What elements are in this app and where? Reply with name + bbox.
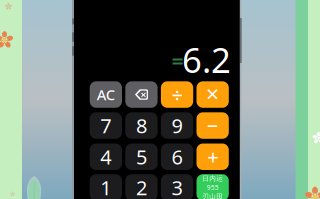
staticText: − [207, 112, 219, 139]
staticText: AC [97, 85, 115, 104]
button[interactable]: ÷ [161, 81, 193, 108]
staticText: ÷ [172, 81, 183, 108]
button[interactable]: 4 [90, 143, 122, 170]
button[interactable]: 1 [90, 174, 122, 199]
button[interactable]: 8 [125, 112, 158, 139]
staticText: 3 [172, 174, 183, 199]
button[interactable]: 7 [90, 112, 122, 139]
staticText: + [207, 143, 218, 170]
button[interactable]: 9 [161, 112, 193, 139]
staticText: 7 [100, 112, 111, 139]
staticText: ✕ [205, 85, 220, 104]
staticText: 6 [172, 143, 183, 170]
staticText: 日内运 [202, 174, 223, 182]
staticText: 刃山田 [202, 192, 223, 199]
staticText: = [171, 47, 183, 75]
button[interactable]: 3 [161, 174, 193, 199]
staticText: 4 [100, 143, 111, 170]
staticText: 2 [136, 174, 147, 199]
staticText: 955 [207, 183, 219, 192]
button[interactable]: Delete [125, 81, 158, 108]
button[interactable]: + [196, 143, 229, 170]
button[interactable]: 2 [125, 174, 158, 199]
staticText: 9 [172, 112, 183, 139]
button[interactable]: ✕ [196, 81, 229, 108]
button[interactable]: AC [90, 81, 122, 108]
button[interactable]: 5 [125, 143, 158, 170]
button[interactable]: − [196, 112, 229, 139]
button[interactable]: 6 [161, 143, 193, 170]
staticText: 1 [100, 174, 111, 199]
staticText: 8 [136, 112, 147, 139]
button[interactable]: Equals [196, 174, 229, 199]
staticText: 6.2 [182, 36, 231, 82]
staticText: 5 [136, 143, 147, 170]
